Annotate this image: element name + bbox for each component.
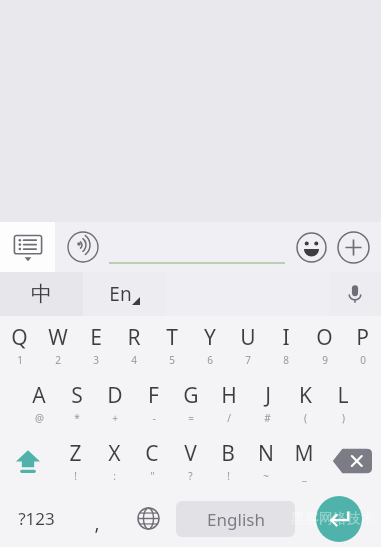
staticText: ?123: [18, 507, 55, 530]
staticText: D: [107, 381, 123, 410]
staticText: 0: [360, 353, 366, 367]
button[interactable]: ,: [72, 490, 122, 547]
staticText: T: [166, 323, 178, 352]
staticText: ?: [188, 469, 193, 483]
button[interactable]: Microphone: [329, 272, 381, 316]
button[interactable]: H: [210, 374, 248, 432]
staticText: 黑客网络技术: [291, 510, 375, 528]
staticText: R: [127, 323, 141, 352]
staticText: 4: [131, 353, 137, 367]
staticText: !: [74, 469, 77, 483]
staticText: 1: [17, 353, 23, 367]
staticText: N: [258, 439, 274, 468]
staticText: S: [71, 381, 83, 410]
button[interactable]: R: [115, 316, 153, 374]
button[interactable]: Enter: [297, 490, 381, 547]
staticText: U: [240, 323, 256, 352]
button[interactable]: T: [153, 316, 191, 374]
staticText: 8: [283, 353, 289, 367]
button[interactable]: X: [95, 432, 133, 490]
button[interactable]: Emoji: [291, 227, 331, 267]
staticText: #: [264, 411, 271, 425]
staticText: P: [356, 323, 369, 352]
staticText: ~: [263, 469, 269, 483]
staticText: En: [109, 281, 132, 307]
button[interactable]: E: [77, 316, 115, 374]
button[interactable]: F: [134, 374, 172, 432]
staticText: /: [227, 411, 231, 425]
staticText: @: [35, 411, 44, 425]
button[interactable]: A: [19, 374, 58, 432]
button[interactable]: O: [305, 316, 343, 374]
staticText: *: [74, 411, 80, 425]
staticText: 中: [31, 281, 52, 307]
button[interactable]: G: [172, 374, 210, 432]
staticText: 2: [55, 353, 61, 367]
button[interactable]: I: [267, 316, 305, 374]
staticText: C: [145, 439, 159, 468]
staticText: H: [221, 381, 237, 410]
button[interactable]: N: [247, 432, 285, 490]
staticText: ): [342, 411, 345, 425]
button[interactable]: V: [171, 432, 209, 490]
button[interactable]: Voice input: [63, 227, 103, 267]
staticText: F: [148, 381, 159, 410]
button[interactable]: C: [133, 432, 171, 490]
staticText: A: [32, 381, 46, 410]
staticText: ,: [94, 510, 100, 536]
staticText: English: [207, 508, 265, 531]
staticText: W: [48, 323, 68, 352]
button[interactable]: Q: [0, 316, 39, 374]
staticText: I: [282, 323, 290, 352]
button[interactable]: Shift: [0, 432, 56, 490]
button[interactable]: W: [39, 316, 77, 374]
staticText: L: [337, 381, 349, 410]
staticText: J: [265, 381, 271, 410]
staticText: B: [221, 439, 235, 468]
staticText: !: [227, 469, 230, 483]
button[interactable]: Z: [56, 432, 95, 490]
button[interactable]: Change language: [122, 490, 174, 547]
staticText: K: [299, 381, 312, 410]
staticText: E: [90, 323, 102, 352]
button[interactable]: English: [176, 501, 295, 537]
staticText: Y: [204, 323, 216, 352]
button[interactable]: P: [343, 316, 381, 374]
staticText: 9: [322, 353, 328, 367]
staticText: 6: [207, 353, 213, 367]
button[interactable]: M: [285, 432, 323, 490]
button[interactable]: 中: [0, 272, 83, 316]
staticText: X: [108, 439, 121, 468]
staticText: (: [304, 411, 307, 425]
staticText: +: [112, 411, 118, 425]
button[interactable]: S: [58, 374, 96, 432]
button[interactable]: En: [83, 272, 166, 316]
button[interactable]: Add: [331, 225, 375, 269]
button[interactable]: Clipboard list: [0, 222, 55, 272]
button[interactable]: B: [209, 432, 247, 490]
staticText: :: [113, 469, 116, 483]
button[interactable]: J: [248, 374, 286, 432]
button[interactable]: Y: [191, 316, 229, 374]
staticText: -: [152, 411, 156, 425]
staticText: Z: [69, 439, 82, 468]
button[interactable]: K: [286, 374, 324, 432]
staticText: 7: [245, 353, 251, 367]
staticText: 3: [93, 353, 99, 367]
button[interactable]: U: [229, 316, 267, 374]
staticText: O: [316, 323, 333, 352]
staticText: 5: [169, 353, 175, 367]
button[interactable]: L: [324, 374, 362, 432]
staticText: ": [150, 469, 155, 483]
staticText: _: [302, 469, 307, 483]
staticText: =: [188, 411, 194, 425]
staticText: Q: [11, 323, 28, 352]
button[interactable]: D: [96, 374, 134, 432]
staticText: M: [294, 439, 314, 468]
button[interactable]: Backspace: [323, 432, 381, 490]
staticText: V: [184, 439, 197, 468]
button[interactable]: ?123: [0, 490, 72, 547]
staticText: G: [183, 381, 199, 410]
